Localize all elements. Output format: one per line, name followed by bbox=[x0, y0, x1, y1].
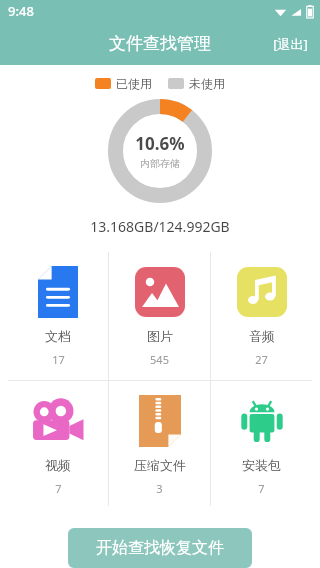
staticText: 安装包 bbox=[242, 457, 281, 473]
staticText: 545 bbox=[150, 352, 169, 367]
button[interactable]: 开始查找恢复文件 bbox=[68, 528, 252, 568]
staticText: 文件查找管理 bbox=[109, 33, 211, 54]
button[interactable]: 图片 bbox=[109, 252, 210, 380]
staticText: [退出] bbox=[273, 35, 308, 53]
staticText: 27 bbox=[255, 352, 268, 367]
button[interactable]: 文档 bbox=[8, 252, 108, 380]
button[interactable]: 压缩文件 bbox=[109, 381, 210, 506]
staticText: 未使用 bbox=[189, 76, 225, 91]
button[interactable]: 安装包 bbox=[211, 381, 312, 506]
staticText: 文档 bbox=[45, 328, 71, 344]
staticText: 图片 bbox=[147, 328, 173, 344]
staticText: 17 bbox=[52, 352, 65, 367]
button[interactable]: [退出] bbox=[261, 27, 320, 61]
staticText: 已使用 bbox=[116, 76, 152, 91]
button[interactable]: 音频 bbox=[211, 252, 312, 380]
staticText: 7 bbox=[55, 481, 62, 496]
staticText: 视频 bbox=[45, 457, 71, 473]
staticText: 内部存储 bbox=[140, 157, 180, 170]
staticText: 7 bbox=[258, 481, 265, 496]
staticText: 3 bbox=[156, 481, 163, 496]
staticText: 10.6% bbox=[135, 132, 185, 155]
staticText: 音频 bbox=[249, 328, 275, 344]
staticText: 开始查找恢复文件 bbox=[96, 538, 224, 558]
staticText: 13.168GB/124.992GB bbox=[0, 217, 320, 236]
staticText: 压缩文件 bbox=[134, 457, 186, 473]
button[interactable]: 视频 bbox=[8, 381, 108, 506]
staticText: 9:48 bbox=[8, 2, 34, 20]
